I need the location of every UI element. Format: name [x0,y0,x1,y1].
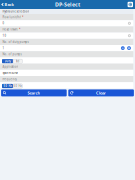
staticText: Head (mwh) [2,28,18,31]
staticText: 60 Hz [14,84,22,88]
button[interactable]: System curve [0,70,133,76]
button[interactable]: Back [0,0,16,9]
button[interactable]: Language [128,0,135,9]
button[interactable]: 10 [0,33,133,39]
staticText: * [19,28,20,31]
staticText: Back [5,2,14,7]
button[interactable]: Decrease [121,46,125,50]
staticText: * [22,15,23,19]
staticText: 50 Hz [3,84,11,88]
staticText: Duty [4,59,10,63]
button[interactable]: Clear [68,89,134,96]
staticText: Frequency [2,77,16,81]
staticText: No. of pumps [2,52,21,56]
staticText: No. of duty pumps [2,40,28,44]
staticText: Hydraulic selection [2,10,29,13]
staticText: 1 [2,46,4,50]
button[interactable]: Increase [127,46,131,50]
staticText: Search [27,90,40,95]
button[interactable]: Std [13,59,22,63]
staticText: Flow (unit/hr) [2,15,21,19]
staticText: 0 [2,21,4,25]
button[interactable]: 0 [0,20,133,26]
staticText: Std [16,59,20,63]
staticText: Application [2,65,18,68]
button[interactable]: 50 Hz [2,84,13,88]
staticText: Clear [96,90,106,95]
button[interactable]: 60 Hz [13,84,22,88]
staticText: DP-Select [55,1,80,8]
button[interactable]: Duty [2,59,13,63]
button[interactable]: Search [1,89,67,96]
staticText: System curve [2,71,18,75]
staticText: 10 [2,34,6,37]
